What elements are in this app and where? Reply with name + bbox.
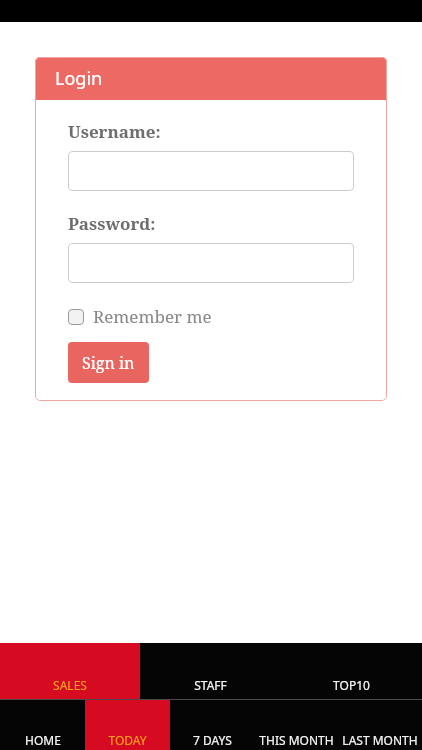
staticText: Password:: [68, 212, 156, 235]
staticText: HOME: [25, 732, 61, 748]
button[interactable]: HOME: [0, 700, 85, 750]
staticText: TOP10: [333, 677, 370, 693]
staticText: Sign in: [82, 352, 135, 374]
button[interactable]: STAFF: [140, 643, 281, 699]
staticText: SALES: [53, 677, 87, 693]
button[interactable]: SALES: [0, 643, 140, 699]
button[interactable]: [68, 151, 354, 191]
button[interactable]: Sign in: [68, 342, 149, 383]
button[interactable]: Remember me: [68, 305, 212, 328]
button[interactable]: TOP10: [281, 643, 422, 699]
staticText: LAST MONTH: [342, 732, 418, 748]
staticText: Remember me: [93, 305, 212, 328]
staticText: STAFF: [194, 677, 227, 693]
button[interactable]: [68, 243, 354, 283]
staticText: THIS MONTH: [259, 732, 334, 748]
button[interactable]: LAST MONTH: [338, 700, 422, 750]
staticText: TODAY: [108, 732, 147, 748]
staticText: 7 DAYS: [193, 732, 232, 748]
button[interactable]: THIS MONTH: [254, 700, 338, 750]
button[interactable]: 7 DAYS: [170, 700, 254, 750]
staticText: Login: [55, 66, 103, 91]
button[interactable]: TODAY: [85, 700, 170, 750]
staticText: Username:: [68, 120, 161, 143]
